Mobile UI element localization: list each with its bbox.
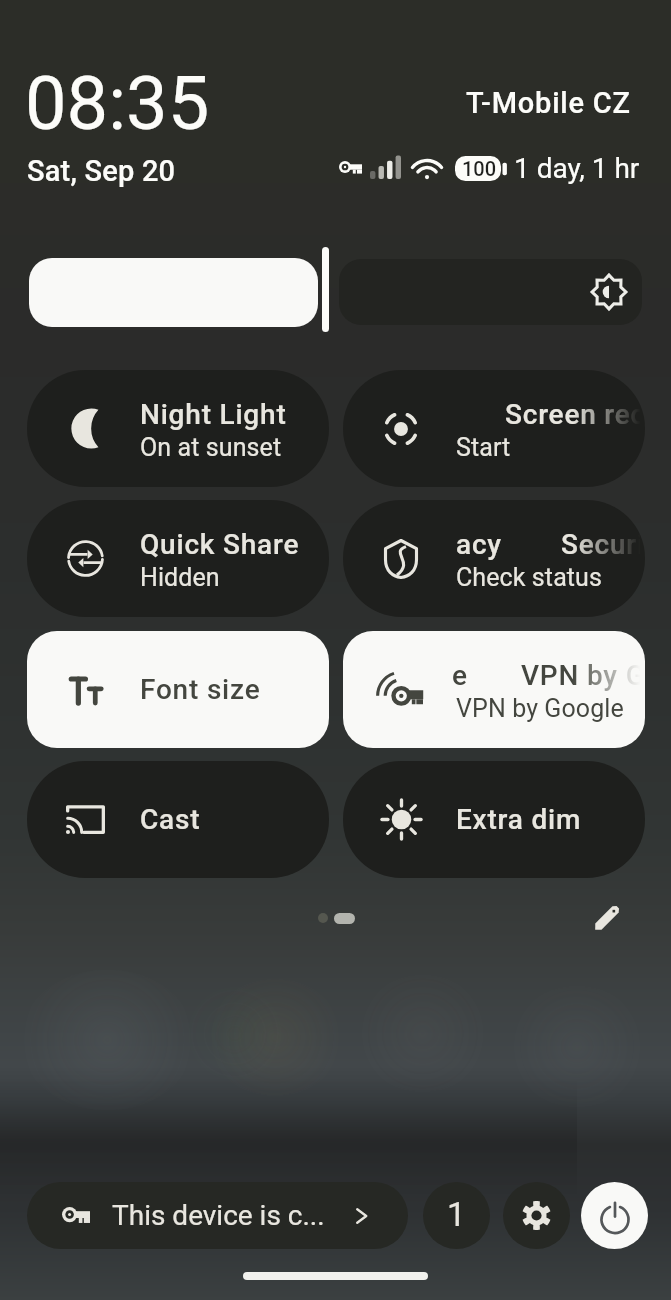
staticText: 1 day, 1 hr [514,152,640,185]
button[interactable]: Power [581,1182,648,1249]
staticText: Sat, Sep 20 [27,154,176,188]
button[interactable]: e [343,631,645,748]
button[interactable]: Cast [27,761,329,878]
button[interactable]: acy [343,500,645,617]
button[interactable]: This device is c... [27,1182,408,1249]
staticText: Night Light [140,398,287,431]
staticText: Screen record [505,398,645,431]
staticText: VPN by Google [456,694,624,723]
staticText: Font size [140,673,261,706]
staticText: This device is c... [112,1199,325,1232]
staticText: 1 [447,1195,466,1234]
staticText: Cast [140,803,201,836]
staticText: Check status [456,563,602,592]
button[interactable]: Font size [27,631,329,748]
button[interactable]: Brightness [29,258,318,327]
staticText: Security [561,528,645,561]
staticText: Extra dim [456,803,582,836]
button[interactable]: Edit tiles [584,896,629,941]
staticText: e [452,659,468,692]
staticText: VPN by Google [521,659,645,692]
staticText: 100 [462,157,497,180]
staticText: Quick Share [140,528,300,561]
staticText: On at sunset [140,433,282,462]
staticText: 08:35 [25,60,210,147]
staticText: acy [456,528,502,561]
staticText: Hidden [140,563,220,592]
button[interactable]: Settings [503,1182,570,1249]
button[interactable]: 1 [423,1182,490,1249]
button[interactable]: Screen record [343,370,645,487]
button[interactable]: Quick Share [27,500,329,617]
staticText: T-Mobile CZ [466,86,631,120]
button[interactable]: Extra dim [343,761,645,878]
button[interactable]: Page 1 [318,913,328,923]
button[interactable]: Page 2 [334,913,355,924]
button[interactable]: Night Light [27,370,329,487]
button[interactable]: Auto brightness [339,259,642,325]
staticText: Start [456,433,511,462]
